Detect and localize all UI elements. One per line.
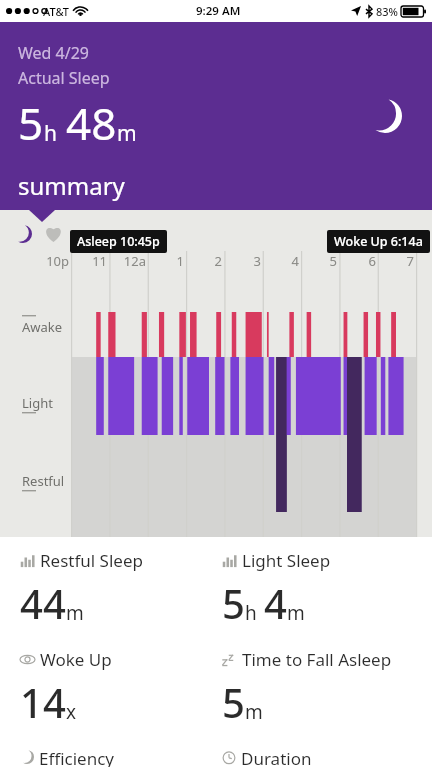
button[interactable]: Woke Up 6:14a <box>334 233 423 250</box>
staticText: Time to Fall Asleep <box>242 648 392 671</box>
staticText: m <box>66 600 84 626</box>
button[interactable]: Sleep tab <box>14 225 32 243</box>
staticText: AT&T <box>43 4 70 19</box>
staticText: 7 <box>380 252 414 270</box>
staticText: Woke Up <box>40 648 112 671</box>
staticText: h <box>245 600 257 626</box>
staticText: 11 <box>73 252 107 270</box>
staticText: 10p <box>35 252 69 270</box>
staticText: 1 <box>150 252 184 270</box>
button[interactable]: Time to Fall Asleep <box>222 648 432 729</box>
staticText: Light Sleep <box>242 549 331 572</box>
staticText: Restful Sleep <box>40 549 143 572</box>
staticText: 12a <box>112 252 146 270</box>
staticText: 4 <box>264 576 287 630</box>
staticText: 14 <box>20 675 66 729</box>
staticText: Duration <box>241 747 312 767</box>
other: Sleep <box>368 99 402 133</box>
staticText: m <box>245 699 263 725</box>
staticText: 5 <box>222 576 245 630</box>
button[interactable]: Heart rate tab <box>44 224 63 243</box>
button[interactable]: Light Sleep <box>222 549 432 630</box>
staticText: 6 <box>342 252 376 270</box>
button[interactable]: Woke Up <box>20 648 216 729</box>
staticText: Light <box>22 394 53 412</box>
staticText: 3 <box>227 252 261 270</box>
staticText: h <box>44 119 57 148</box>
button[interactable]: Asleep 10:45p <box>77 233 160 250</box>
staticText: m <box>287 600 305 626</box>
staticText: 83% <box>376 4 398 19</box>
staticText: 9:29 AM <box>196 3 241 19</box>
staticText: Restful <box>22 472 65 490</box>
staticText: Efficiency <box>39 747 115 767</box>
staticText: Actual Sleep <box>18 67 110 89</box>
staticText: Wed 4/29 <box>18 42 89 64</box>
staticText: summary <box>18 169 125 202</box>
staticText: 2 <box>188 252 222 270</box>
staticText: 48 <box>66 93 117 153</box>
staticText: Awake <box>22 318 63 336</box>
staticText: Asleep 10:45p <box>77 233 160 250</box>
staticText: 44 <box>20 576 66 630</box>
staticText: 5 <box>303 252 337 270</box>
button[interactable]: Restful Sleep <box>20 549 216 630</box>
staticText: 5 <box>18 93 44 153</box>
staticText: 4 <box>265 252 299 270</box>
staticText: 5 <box>222 675 245 729</box>
staticText: x <box>66 699 77 725</box>
staticText: m <box>117 119 137 148</box>
staticText: Woke Up 6:14a <box>334 233 423 250</box>
